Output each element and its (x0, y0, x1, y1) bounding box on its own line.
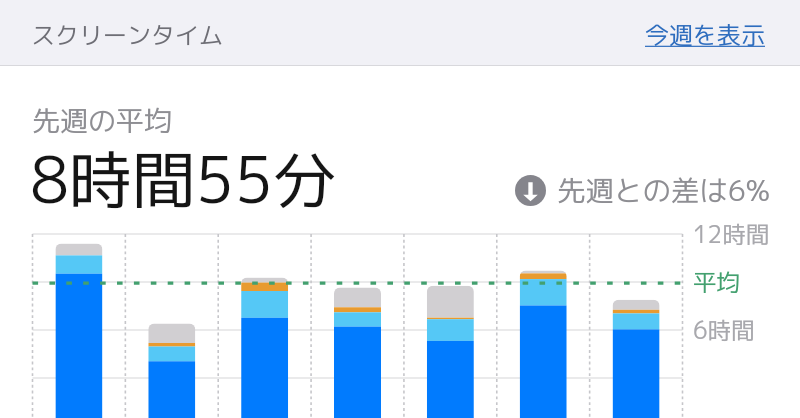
staticText: 今週を表示 (645, 18, 765, 51)
staticText: 6時間 (693, 314, 755, 347)
staticText: 先週との差は6% (557, 170, 770, 210)
staticText: 先週の平均 (32, 101, 173, 140)
button[interactable]: 火曜日の利用時間 (218, 234, 310, 418)
button[interactable]: 先週より減少 (515, 170, 770, 210)
button[interactable]: 今週を表示 (645, 18, 765, 51)
button[interactable]: 月曜日の利用時間 (125, 234, 217, 418)
staticText: スクリーンタイム (31, 18, 223, 51)
other: 先週より減少 (515, 175, 546, 206)
button[interactable]: 水曜日の利用時間 (311, 234, 403, 418)
button[interactable]: 木曜日の利用時間 (404, 234, 496, 418)
staticText: 平均 (693, 266, 740, 299)
staticText: 8時間55分 (30, 135, 337, 223)
button[interactable]: 土曜日の利用時間 (590, 234, 682, 418)
button[interactable]: 金曜日の利用時間 (497, 234, 589, 418)
staticText: 12時間 (693, 218, 770, 251)
button[interactable]: 日曜日の利用時間 (33, 234, 125, 418)
